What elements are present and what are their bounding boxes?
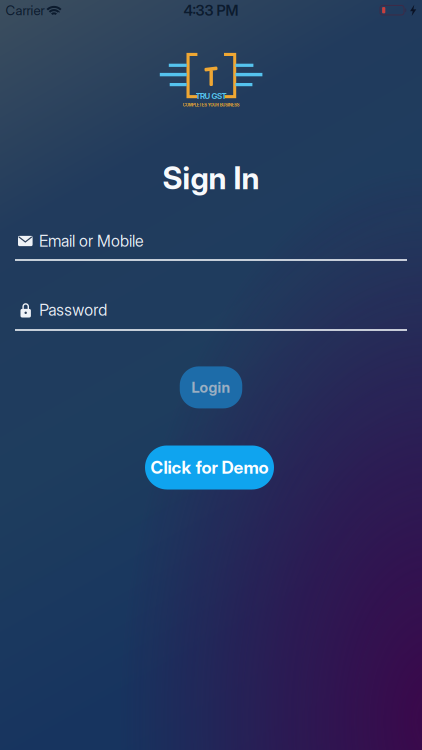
staticText: Click for Demo (150, 457, 268, 478)
staticText: TRU GST (195, 91, 226, 101)
staticText: 4:33 PM (183, 2, 238, 19)
staticText: Email or Mobile (39, 232, 144, 250)
button[interactable]: Login (180, 366, 242, 408)
button[interactable]: Password (15, 293, 407, 331)
staticText: COMPLETES YOUR BUSINESS (157, 100, 265, 110)
staticText: Password (39, 301, 107, 319)
button[interactable]: Email or Mobile (15, 224, 407, 262)
staticText: Carrier (5, 3, 44, 18)
staticText: Sign In (162, 160, 259, 196)
button[interactable]: Click for Demo (145, 445, 274, 489)
staticText: Login (191, 379, 230, 396)
